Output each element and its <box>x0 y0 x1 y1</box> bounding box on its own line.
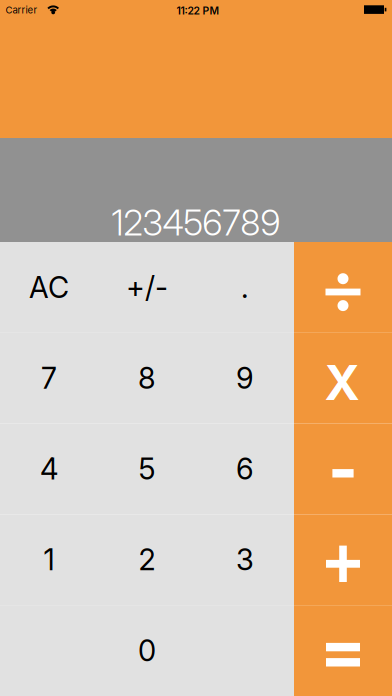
button[interactable]: 0 <box>98 605 196 696</box>
button[interactable]: . <box>196 242 294 333</box>
button[interactable]: Divide <box>294 242 392 333</box>
staticText: 1 <box>43 542 54 577</box>
staticText: 123456789 <box>111 201 280 244</box>
button[interactable]: 2 <box>98 514 196 605</box>
staticText: . <box>241 270 249 305</box>
staticText: 6 <box>236 451 254 487</box>
button[interactable]: 7 <box>0 333 98 424</box>
button[interactable]: 3 <box>196 514 294 605</box>
staticText: +/- <box>126 270 168 305</box>
button[interactable]: 1 <box>0 514 98 605</box>
staticText: Carrier <box>5 4 37 16</box>
staticText: 3 <box>236 542 254 577</box>
button[interactable]: +/- <box>98 242 196 333</box>
staticText: 8 <box>138 361 156 396</box>
staticText: 2 <box>138 542 155 577</box>
staticText: 7 <box>41 361 57 396</box>
staticText: X <box>324 354 359 412</box>
button[interactable]: 5 <box>98 424 196 514</box>
button[interactable]: Equals <box>294 605 392 696</box>
staticText: 5 <box>138 451 155 487</box>
staticText: 0 <box>138 633 156 668</box>
button[interactable]: Multiply <box>294 333 392 424</box>
button[interactable]: 8 <box>98 333 196 424</box>
button[interactable]: Add <box>294 514 392 605</box>
staticText: 4 <box>40 451 58 487</box>
button[interactable]: Subtract <box>294 424 392 514</box>
button[interactable]: AC <box>0 242 98 333</box>
staticText: 9 <box>236 361 254 396</box>
button[interactable]: 6 <box>196 424 294 514</box>
button[interactable]: 4 <box>0 424 98 514</box>
staticText: 11:22 PM <box>176 4 219 17</box>
button[interactable]: 9 <box>196 333 294 424</box>
staticText: AC <box>29 270 69 305</box>
